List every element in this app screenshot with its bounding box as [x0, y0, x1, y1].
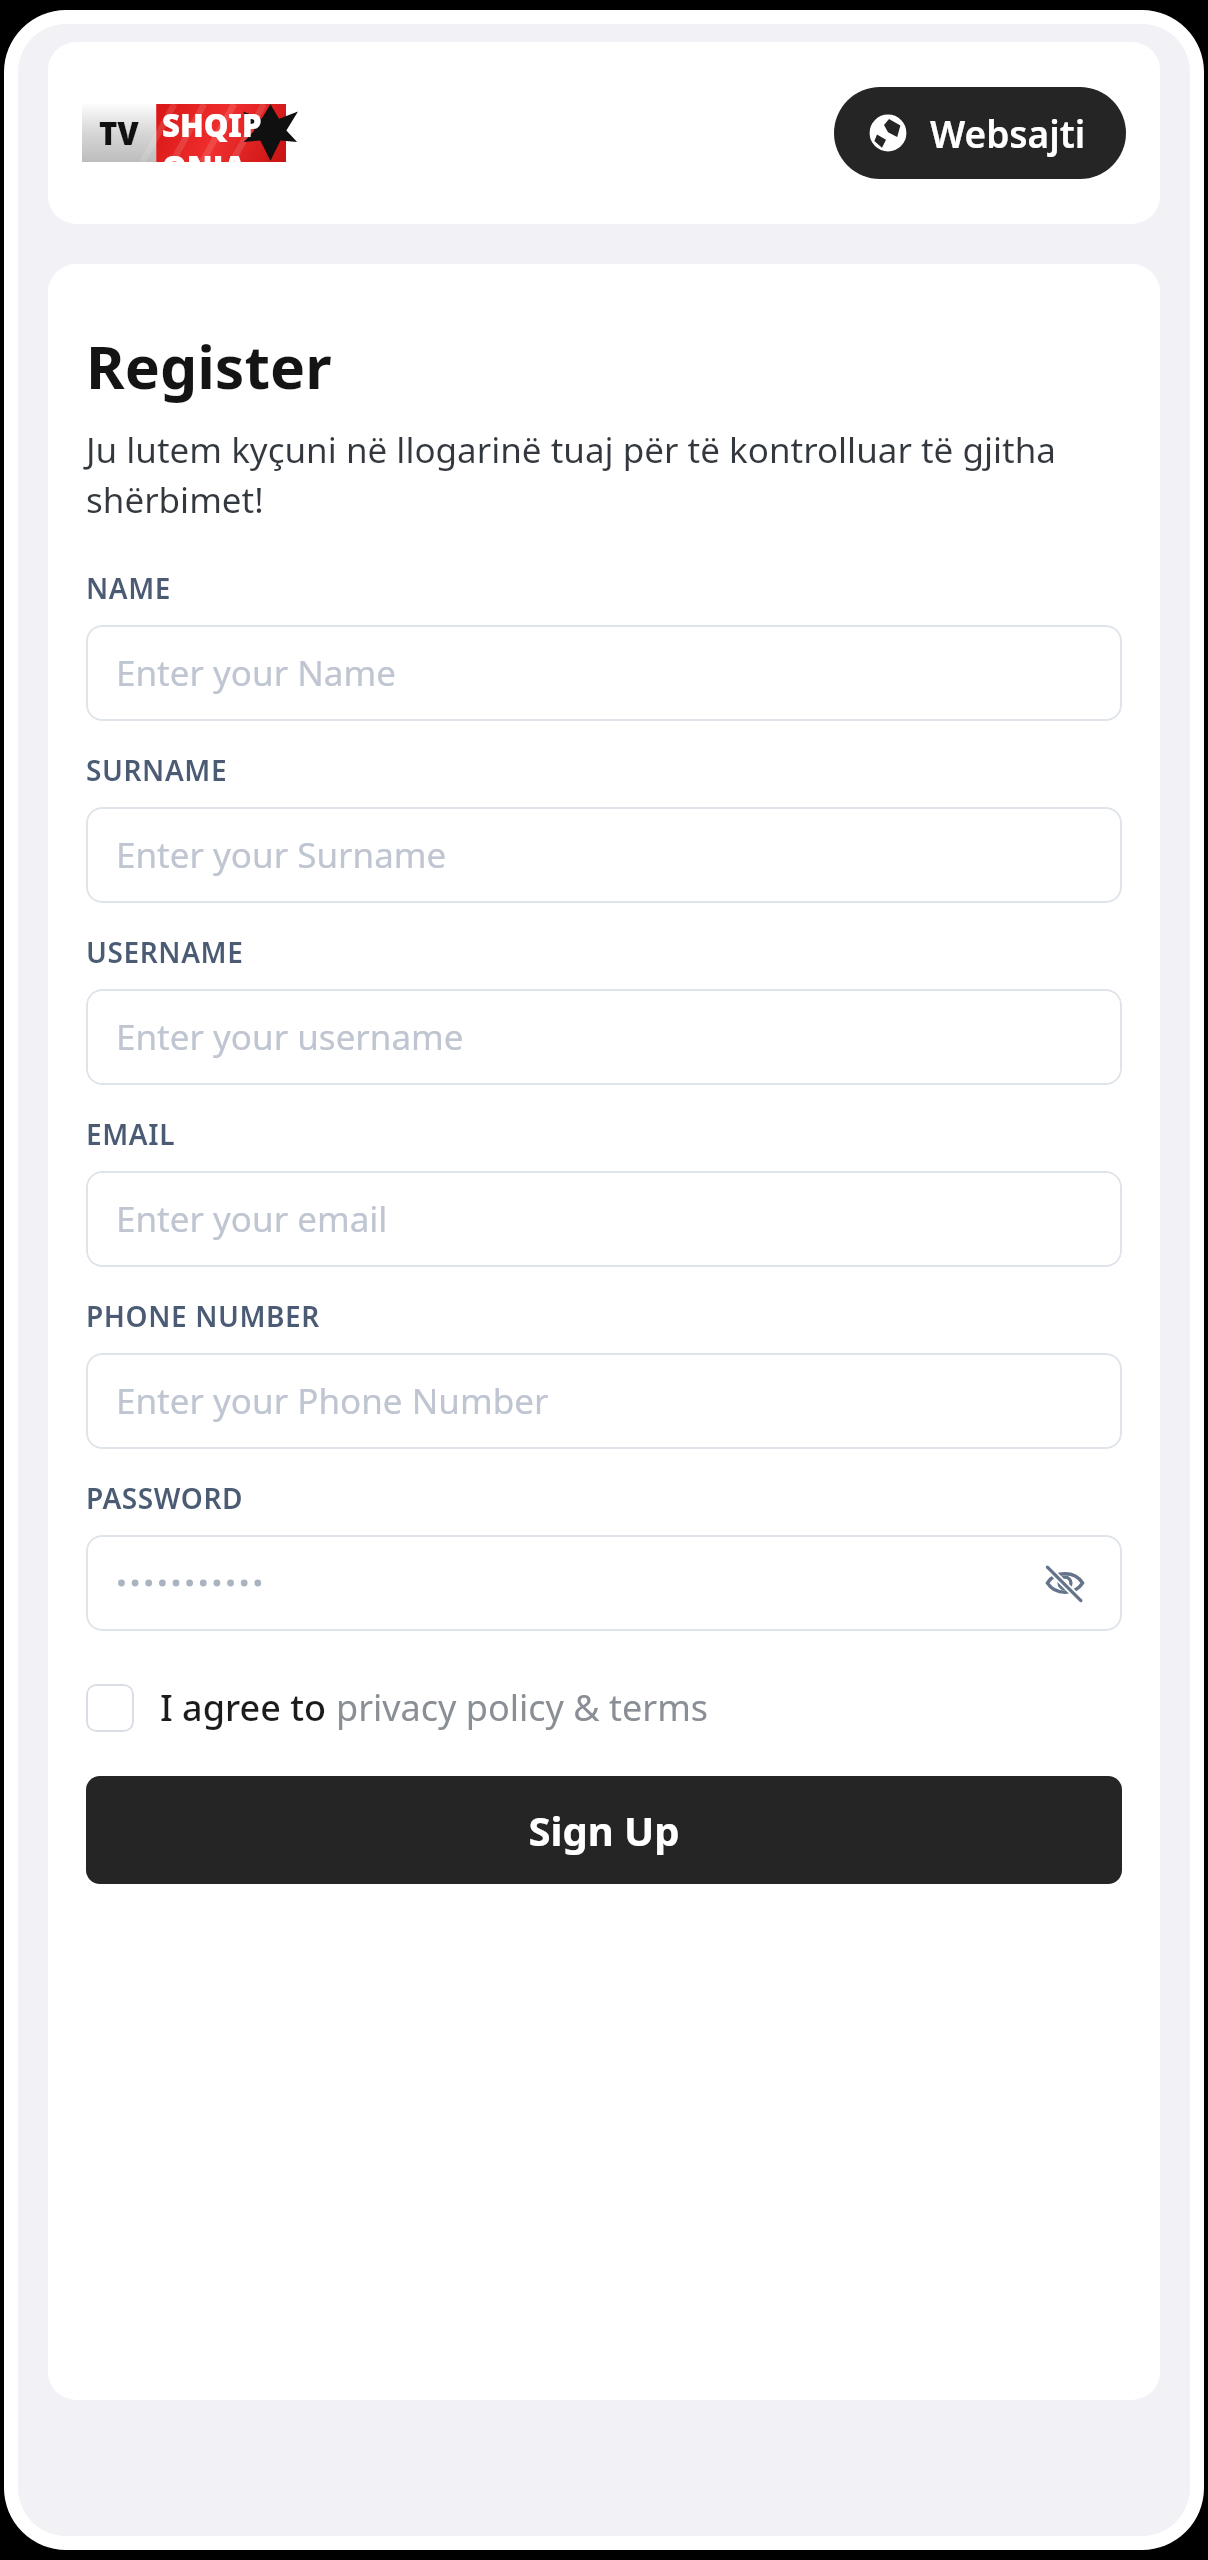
staticText: Sign Up [528, 1803, 680, 1857]
staticText: Enter your Phone Number [116, 1377, 549, 1425]
button[interactable]: Show password [1038, 1556, 1092, 1610]
staticText: PASSWORD [86, 1479, 244, 1517]
button[interactable]: Enter your Phone Number [86, 1353, 1122, 1449]
button[interactable]: Enter your username [86, 989, 1122, 1085]
staticText: Enter your email [116, 1195, 388, 1243]
staticText: TV [99, 112, 139, 154]
staticText: Enter your Surname [116, 831, 447, 879]
staticText: EMAIL [86, 1115, 176, 1153]
button[interactable]: Enter your Name [86, 625, 1122, 721]
staticText: USERNAME [86, 933, 244, 971]
button[interactable]: Sign Up [86, 1776, 1122, 1884]
staticText: privacy policy & terms [336, 1683, 709, 1732]
button[interactable]: Show password [86, 1535, 1122, 1631]
staticText: Register [86, 326, 332, 406]
staticText: SHQIPONJA [162, 104, 286, 162]
button[interactable]: Websajti [834, 87, 1126, 179]
button[interactable]: Enter your email [86, 1171, 1122, 1267]
button[interactable]: Enter your Surname [86, 807, 1122, 903]
button[interactable]: TV Shqiponja logo [82, 104, 286, 162]
staticText: Enter your username [116, 1013, 464, 1061]
staticText: Enter your Name [116, 649, 396, 697]
staticText: NAME [86, 569, 172, 607]
staticText: Websajti [930, 108, 1086, 158]
staticText: I agree to [160, 1683, 336, 1732]
staticText: PHONE NUMBER [86, 1297, 320, 1335]
staticText: Ju lutem kyçuni në llogarinë tuaj për të… [86, 426, 1122, 523]
button[interactable]: I agree to [86, 1675, 1122, 1740]
staticText: SURNAME [86, 751, 228, 789]
